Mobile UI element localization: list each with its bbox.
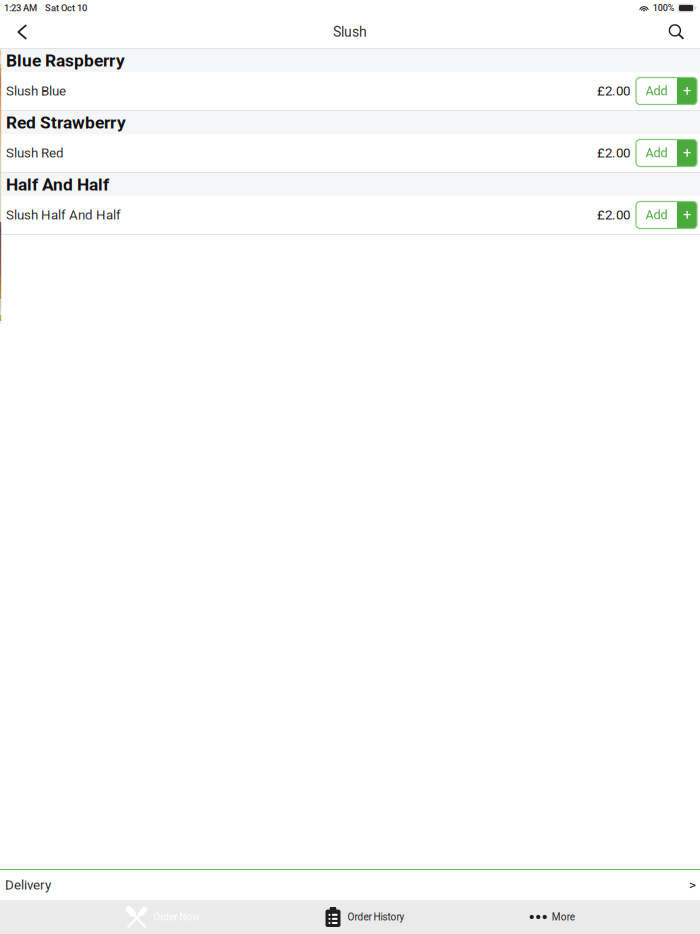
- staticText: +: [683, 82, 691, 100]
- staticText: Slush: [333, 24, 367, 40]
- button[interactable]: Slush Half And Half: [0, 196, 700, 234]
- staticText: Add: [645, 146, 667, 160]
- button[interactable]: Search: [653, 16, 700, 48]
- staticText: Slush Half And Half: [6, 207, 121, 223]
- staticText: Half And Half: [6, 174, 109, 195]
- button[interactable]: Slush Blue: [0, 72, 700, 110]
- staticText: £2.00: [597, 145, 630, 161]
- staticText: Order Now: [153, 911, 200, 923]
- staticText: 100%: [653, 3, 675, 13]
- staticText: Slush Blue: [6, 83, 66, 99]
- staticText: Add: [645, 208, 667, 222]
- button[interactable]: Delivery: [0, 870, 700, 900]
- staticText: £2.00: [597, 207, 630, 223]
- staticText: Sat Oct 10: [45, 2, 87, 13]
- staticText: +: [683, 144, 691, 162]
- staticText: More: [552, 911, 575, 923]
- button[interactable]: Order Now: [125, 900, 200, 934]
- button[interactable]: Order History: [325, 900, 404, 934]
- staticText: Order History: [347, 911, 404, 923]
- button[interactable]: Add: [636, 201, 697, 228]
- staticText: >: [689, 877, 696, 893]
- button[interactable]: More: [530, 900, 575, 934]
- button[interactable]: Back: [0, 16, 44, 48]
- staticText: +: [683, 206, 691, 224]
- staticText: Blue Raspberry: [6, 50, 125, 71]
- staticText: 1:23 AM: [4, 2, 37, 13]
- staticText: Delivery: [5, 877, 51, 893]
- button[interactable]: Add: [636, 139, 697, 166]
- staticText: Slush Red: [6, 145, 64, 161]
- button[interactable]: Add: [636, 77, 697, 104]
- button[interactable]: Slush Red: [0, 134, 700, 172]
- staticText: £2.00: [597, 83, 630, 99]
- staticText: Add: [645, 84, 667, 98]
- staticText: Red Strawberry: [6, 112, 126, 133]
